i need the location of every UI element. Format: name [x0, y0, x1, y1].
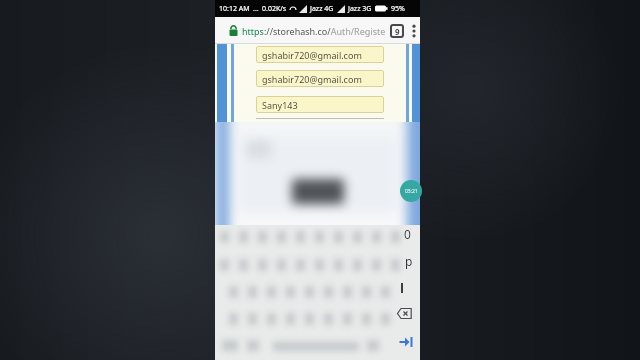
button[interactable]: 05:21: [400, 180, 422, 202]
button[interactable]: 9: [390, 24, 404, 38]
button[interactable]: gshabir720@gmail.com: [256, 46, 384, 63]
button[interactable]: Sany143: [256, 96, 384, 113]
staticText: 10:12 AM: [219, 4, 250, 14]
staticText: Jazz 3G: [348, 4, 372, 14]
button[interactable]: [399, 336, 413, 348]
button[interactable]: [397, 308, 412, 319]
button[interactable]: [412, 24, 416, 38]
staticText: 9: [395, 26, 400, 37]
button[interactable]: https://storehash.co/Auth/Registe: [242, 25, 390, 37]
staticText: Jazz 4G: [310, 4, 334, 14]
staticText: Sany143: [262, 99, 298, 111]
button[interactable]: gshabir720@gmail.com: [256, 70, 384, 87]
staticText: ...: [253, 4, 259, 14]
staticText: 05:21: [405, 188, 418, 195]
staticText: 0: [404, 226, 411, 242]
staticText: 0.02K/s: [262, 4, 287, 14]
staticText: gshabir720@gmail.com: [262, 73, 362, 85]
staticText: 95%: [391, 4, 405, 14]
staticText: p: [405, 253, 413, 269]
staticText: gshabir720@gmail.com: [262, 49, 362, 61]
